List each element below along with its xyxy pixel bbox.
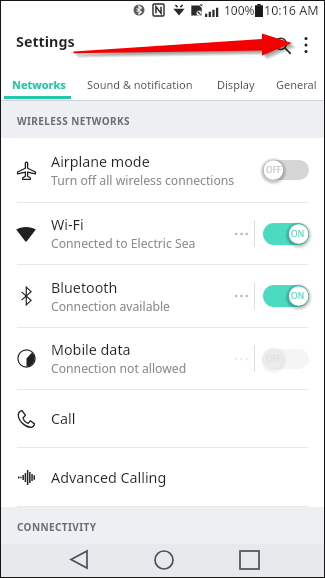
button[interactable]: More options [290, 29, 322, 61]
button[interactable]: Turn on [263, 158, 309, 182]
button[interactable]: Advanced Calling [1, 448, 324, 506]
staticText: OFF [266, 353, 282, 365]
button[interactable]: Turn off [263, 284, 309, 308]
button[interactable]: Recents [227, 543, 272, 576]
staticText: Wi-Fi [51, 215, 84, 234]
staticText: Networks [12, 77, 66, 92]
button[interactable]: Turn on [263, 347, 309, 371]
staticText: Mobile data [51, 340, 131, 359]
button[interactable]: Back [56, 543, 101, 576]
staticText: Bluetooth [51, 278, 118, 297]
staticText: Connection available [51, 298, 170, 315]
staticText: 10:16 AM [264, 2, 319, 19]
staticText: 100% [224, 2, 255, 18]
button[interactable]: Turn off [263, 222, 309, 246]
button[interactable]: Sound & notification [77, 70, 203, 101]
staticText: General [276, 77, 317, 92]
button[interactable]: Call [1, 390, 324, 447]
staticText: Connection not allowed [51, 360, 187, 377]
staticText: Airplane mode [51, 152, 150, 171]
staticText: CONNECTIVITY [17, 520, 97, 534]
staticText: Connected to Electric Sea [51, 235, 196, 252]
staticText: OFF [266, 164, 282, 176]
staticText: Advanced Calling [51, 468, 167, 487]
button[interactable]: Mobile data [1, 328, 324, 389]
button[interactable]: Home [141, 543, 186, 576]
staticText: ON [291, 290, 305, 302]
button[interactable]: General [268, 70, 324, 101]
staticText: Settings [16, 32, 75, 51]
button[interactable]: Wi-Fi [1, 203, 324, 264]
button[interactable]: Display [203, 70, 268, 101]
button[interactable]: Airplane mode [1, 138, 324, 202]
staticText: Turn off all wireless connections [51, 172, 235, 189]
button[interactable]: Networks [1, 70, 77, 101]
staticText: Call [51, 409, 76, 428]
staticText: Display [217, 77, 255, 92]
button[interactable]: Bluetooth [1, 265, 324, 327]
button[interactable]: Search [266, 29, 298, 61]
staticText: ON [291, 228, 305, 240]
staticText: WIRELESS NETWORKS [17, 114, 131, 128]
staticText: Sound & notification [87, 77, 193, 92]
